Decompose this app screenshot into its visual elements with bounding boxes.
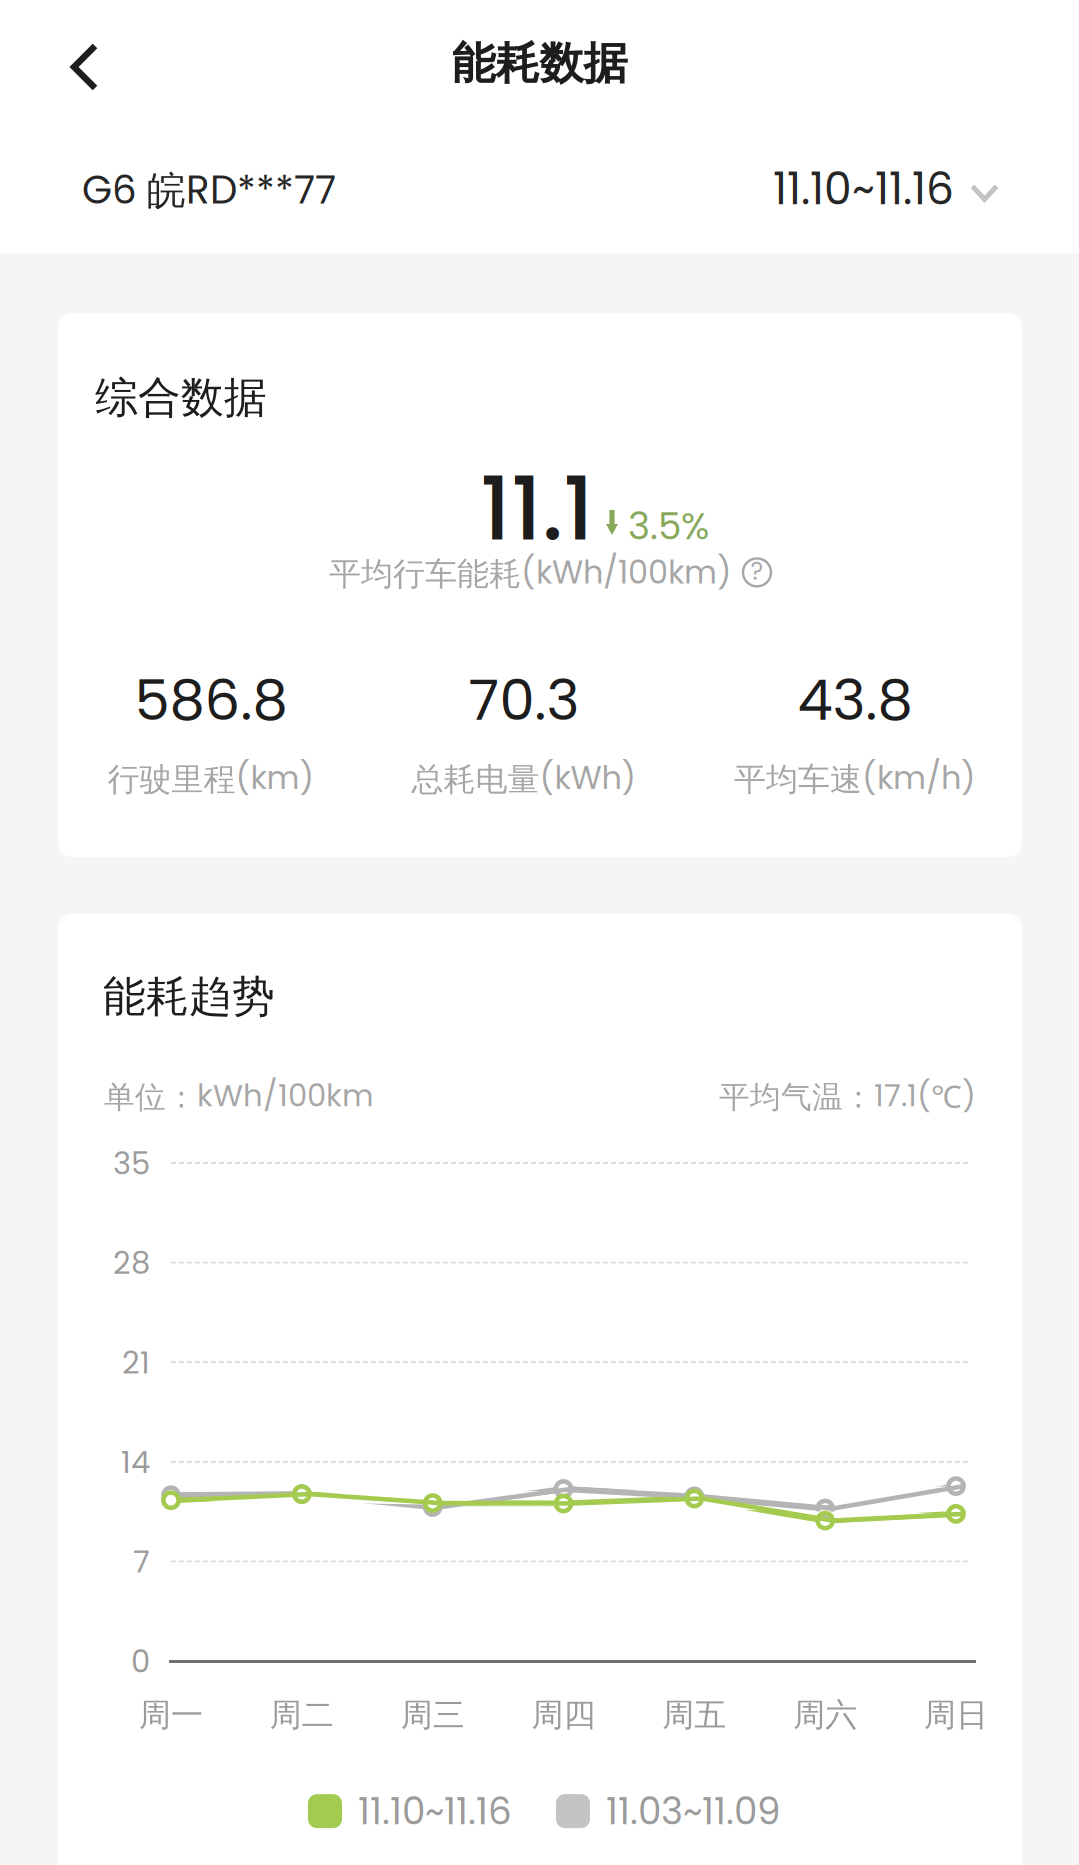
staticText: 21	[122, 1341, 150, 1384]
staticText: 周二	[270, 1695, 334, 1735]
staticText: 周三	[401, 1695, 465, 1735]
staticText: 0	[131, 1640, 150, 1683]
staticText: 11.10~11.16	[773, 158, 954, 220]
staticText: 7	[133, 1540, 150, 1583]
staticText: 周日	[924, 1695, 988, 1735]
staticText: 能耗趋势	[103, 970, 275, 1024]
button[interactable]: Back	[48, 21, 121, 113]
staticText: 28	[113, 1242, 150, 1284]
staticText: 能耗数据	[451, 36, 627, 91]
staticText: 周一	[139, 1695, 203, 1735]
staticText: 70.3	[468, 661, 579, 739]
staticText: 总耗电量(kWh)	[411, 755, 636, 800]
staticText: 行驶里程(km)	[107, 755, 314, 800]
staticText: G6 皖RD***77	[82, 163, 336, 217]
staticText: 平均行车能耗(kWh/100km)	[329, 550, 732, 595]
staticText: 11.03~11.09	[606, 1785, 781, 1837]
staticText: 35	[113, 1142, 150, 1185]
staticText: 14	[121, 1441, 150, 1484]
staticText: 3.5%	[628, 500, 709, 552]
staticText: 单位：kWh/100km	[104, 1074, 374, 1117]
staticText: 周六	[793, 1695, 857, 1735]
staticText: 周五	[662, 1695, 726, 1735]
staticText: 周四	[531, 1695, 595, 1735]
staticText: 11.1	[480, 447, 594, 570]
staticText: 11.10~11.16	[358, 1785, 512, 1837]
staticText: 586.8	[134, 661, 287, 739]
staticText: 43.8	[797, 661, 912, 739]
staticText: ?	[750, 555, 763, 588]
button[interactable]: 11.10~11.16	[765, 142, 1007, 236]
staticText: 平均气温：17.1(℃)	[719, 1074, 976, 1117]
staticText: 平均车速(km/h)	[734, 755, 976, 800]
staticText: 综合数据	[95, 371, 267, 425]
